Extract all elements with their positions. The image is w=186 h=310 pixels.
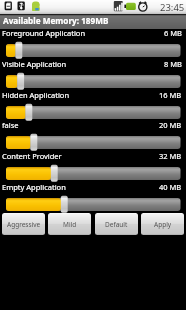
staticText: Content Provider [2, 151, 62, 161]
staticText: Hidden Application [2, 90, 70, 100]
staticText: Aggressive [7, 220, 41, 229]
button[interactable]: Hidden Application [0, 90, 186, 121]
staticText: Apply [154, 220, 172, 229]
staticText: Available Memory: 189MB [3, 15, 109, 26]
staticText: 23:45 [160, 1, 185, 14]
staticText: 32 MB [159, 151, 182, 161]
staticText: 6 MB [164, 28, 182, 38]
staticText: Mild [63, 220, 77, 229]
staticText: 8 MB [164, 59, 182, 69]
staticText: Empty Application [2, 182, 66, 192]
button[interactable]: Mild [48, 213, 91, 235]
button[interactable]: Aggressive [2, 213, 45, 235]
button[interactable]: Foreground Application [0, 28, 186, 59]
staticText: 20 MB [159, 120, 182, 130]
staticText: Visible Application [2, 59, 67, 69]
staticText: Default [105, 220, 128, 229]
staticText: Foreground Application [2, 28, 86, 38]
button[interactable]: Content Provider [0, 151, 186, 182]
button[interactable]: Visible Application [0, 59, 186, 90]
staticText: 40 MB [159, 182, 182, 192]
button[interactable]: Default [95, 213, 138, 235]
staticText: 16 MB [159, 90, 182, 100]
button[interactable]: Apply [141, 213, 184, 235]
staticText: false [2, 120, 19, 130]
button[interactable]: Empty Application [0, 182, 186, 213]
button[interactable]: false [0, 120, 186, 151]
